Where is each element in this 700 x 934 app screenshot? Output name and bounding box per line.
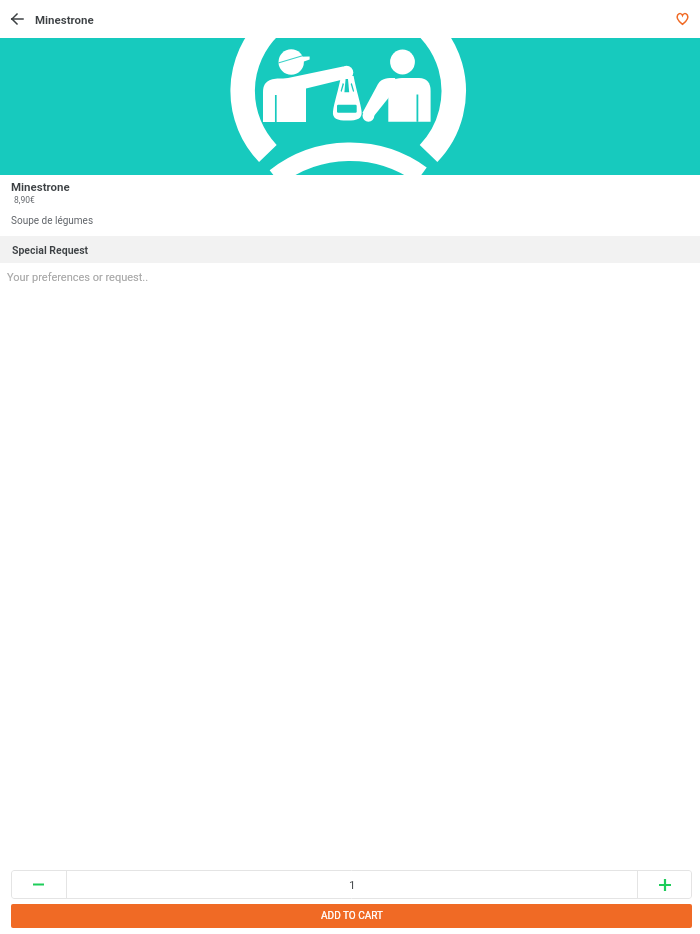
staticText: Special Request xyxy=(12,244,89,256)
staticText: 1 xyxy=(349,878,356,891)
button[interactable]: 1 xyxy=(67,870,637,899)
staticText: Your preferences or request.. xyxy=(7,271,149,284)
button[interactable]: Decrease quantity xyxy=(11,870,66,899)
button[interactable]: Favorite xyxy=(670,7,694,31)
button[interactable]: Your preferences or request.. xyxy=(0,263,700,291)
staticText: Minestrone xyxy=(11,180,70,193)
button[interactable]: Increase quantity xyxy=(638,870,692,899)
staticText: ADD TO CART xyxy=(321,910,383,922)
staticText: 8,90€ xyxy=(14,195,35,205)
staticText: Minestrone xyxy=(35,13,94,26)
button[interactable]: ADD TO CART xyxy=(11,904,692,928)
staticText: Soupe de légumes xyxy=(11,215,94,227)
button[interactable]: Back xyxy=(5,7,29,31)
